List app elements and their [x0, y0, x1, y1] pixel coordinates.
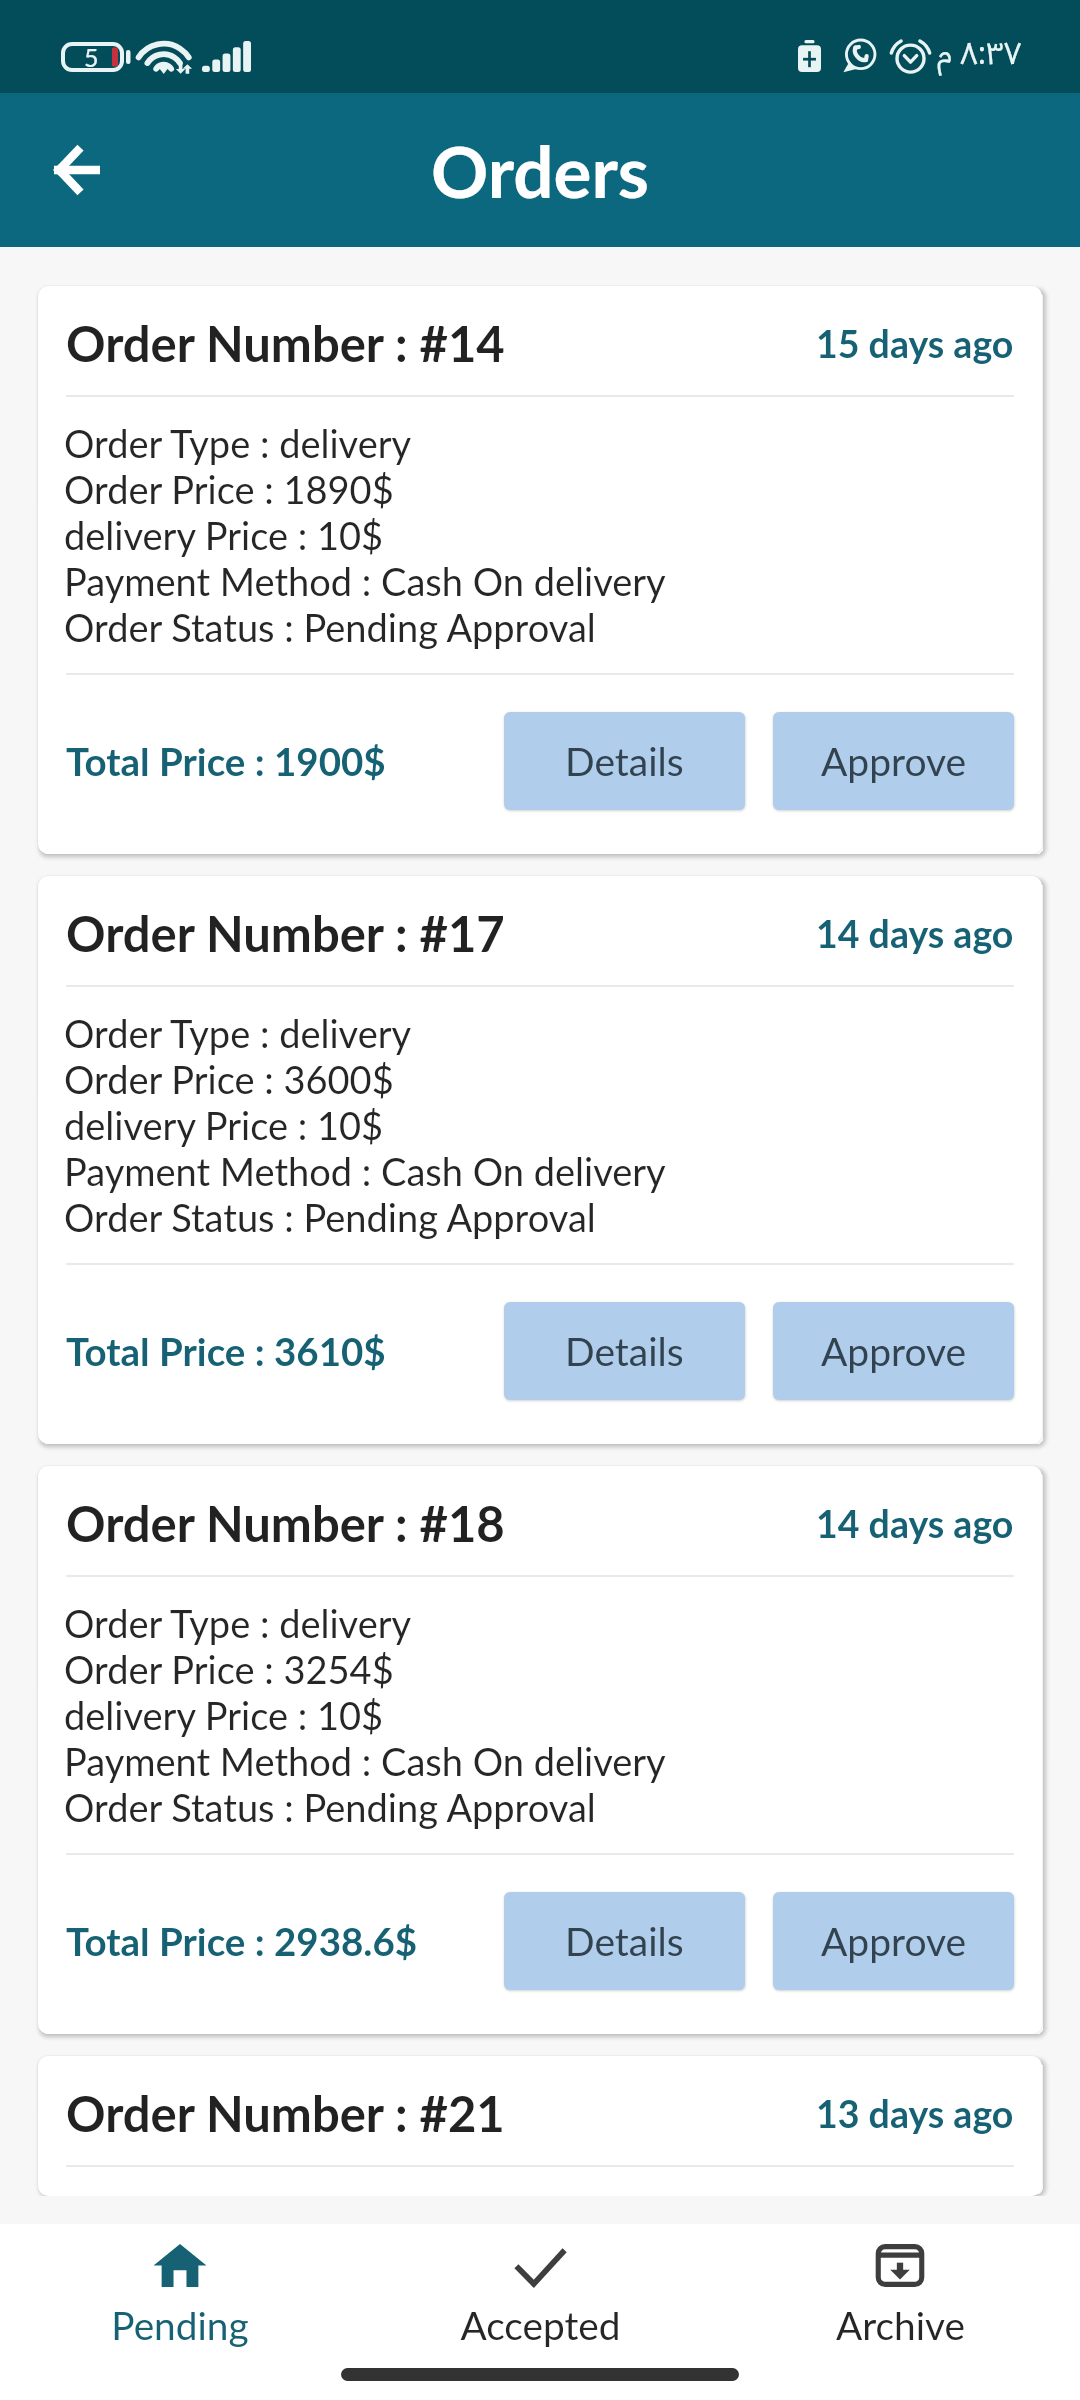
staticText: Total Price : 3610$: [66, 1328, 386, 1374]
staticText: Approve: [821, 1918, 967, 1965]
staticText: Order Price : 3600$: [64, 1056, 394, 1102]
staticText: Order Type : delivery: [64, 420, 412, 466]
staticText: Order Status : Pending Approval: [64, 604, 596, 650]
staticText: Total Price : 1900$: [66, 738, 386, 784]
button[interactable]: Order Number : #14: [38, 286, 1042, 854]
button[interactable]: Order Number : #21: [38, 2056, 1042, 2196]
button[interactable]: Accepted: [360, 2224, 720, 2400]
staticText: Details: [565, 738, 684, 785]
staticText: Payment Method : Cash On delivery: [64, 1148, 666, 1194]
staticText: Order Number : #17: [66, 904, 505, 963]
staticText: delivery Price : 10$: [64, 1692, 384, 1738]
staticText: Order Price : 3254$: [64, 1646, 394, 1692]
staticText: Order Status : Pending Approval: [64, 1194, 596, 1240]
staticText: 5: [84, 42, 99, 72]
staticText: Payment Method : Cash On delivery: [64, 1738, 666, 1784]
staticText: delivery Price : 10$: [64, 512, 384, 558]
staticText: Order Type : delivery: [64, 1600, 412, 1646]
staticText: Pending: [111, 2302, 249, 2349]
button[interactable]: Back: [21, 114, 133, 226]
staticText: Approve: [821, 1328, 967, 1375]
staticText: Details: [565, 1918, 684, 1965]
staticText: Details: [565, 1328, 684, 1375]
staticText: delivery Price : 10$: [64, 1102, 384, 1148]
button[interactable]: Details: [504, 1302, 745, 1400]
staticText: Order Number : #18: [66, 1494, 505, 1553]
staticText: Accepted: [460, 2302, 621, 2349]
staticText: 14 days ago: [816, 1501, 1014, 1546]
staticText: 14 days ago: [816, 911, 1014, 956]
button[interactable]: Details: [504, 712, 745, 810]
button[interactable]: Approve: [773, 712, 1014, 810]
staticText: Total Price : 2938.6$: [66, 1918, 418, 1964]
staticText: 13 days ago: [816, 2091, 1014, 2136]
button[interactable]: Archive: [720, 2224, 1080, 2400]
staticText: Payment Method : Cash On delivery: [64, 558, 666, 604]
staticText: ٨:٣٧ م: [937, 21, 1022, 86]
button[interactable]: Details: [504, 1892, 745, 1990]
button[interactable]: Order Number : #18: [38, 1466, 1042, 2034]
button[interactable]: Pending: [0, 2224, 360, 2400]
staticText: Archive: [836, 2302, 965, 2349]
button[interactable]: Order Number : #17: [38, 876, 1042, 1444]
staticText: Order Status : Pending Approval: [64, 1784, 596, 1830]
staticText: Order Type : delivery: [64, 1010, 412, 1056]
staticText: Order Number : #21: [66, 2084, 505, 2143]
staticText: Approve: [821, 738, 967, 785]
staticText: Order Number : #14: [66, 314, 505, 373]
button[interactable]: Approve: [773, 1302, 1014, 1400]
staticText: Order Price : 1890$: [64, 466, 394, 512]
button[interactable]: Approve: [773, 1892, 1014, 1990]
staticText: Orders: [431, 128, 650, 213]
staticText: 15 days ago: [816, 321, 1014, 366]
